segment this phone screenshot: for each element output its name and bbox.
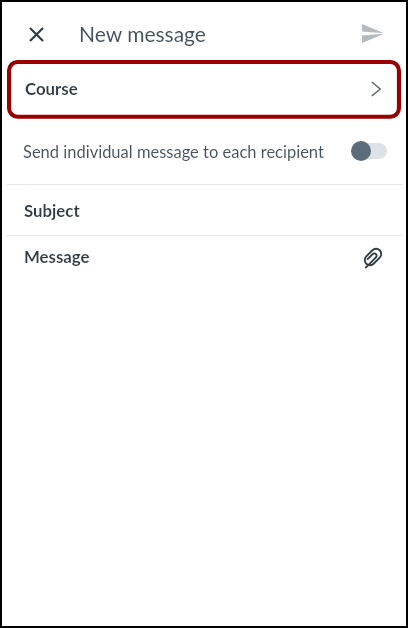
- button[interactable]: Message: [2, 236, 406, 286]
- button[interactable]: Subject: [2, 185, 406, 235]
- staticText: New message: [79, 21, 206, 46]
- button[interactable]: Attach file: [358, 242, 388, 272]
- button[interactable]: Send: [353, 13, 393, 53]
- button[interactable]: Send individual message to each recipien…: [2, 120, 406, 184]
- staticText: Message: [24, 246, 90, 266]
- button[interactable]: Close: [16, 14, 56, 54]
- staticText: Subject: [24, 200, 80, 220]
- staticText: Course: [25, 78, 78, 98]
- button[interactable]: Course: [2, 60, 406, 120]
- staticText: Send individual message to each recipien…: [23, 142, 324, 162]
